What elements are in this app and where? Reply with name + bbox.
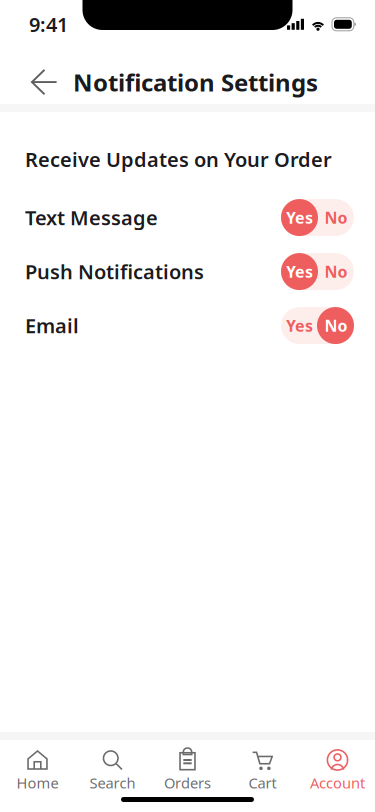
staticText: Account bbox=[310, 773, 365, 792]
staticText: No bbox=[324, 261, 347, 282]
staticText: No bbox=[324, 315, 347, 336]
staticText: Orders bbox=[164, 773, 211, 792]
button[interactable]: Home bbox=[0, 749, 75, 792]
staticText: Search bbox=[89, 773, 135, 792]
button[interactable]: Search bbox=[75, 749, 150, 792]
staticText: Cart bbox=[248, 773, 276, 792]
staticText: Text Message bbox=[25, 204, 158, 231]
staticText: Home bbox=[16, 773, 58, 792]
staticText: Push Notifications bbox=[25, 258, 204, 285]
button[interactable]: Yes bbox=[281, 253, 354, 290]
staticText: Yes bbox=[286, 315, 313, 336]
button[interactable]: Back bbox=[31, 70, 73, 95]
staticText: No bbox=[324, 207, 347, 228]
staticText: Email bbox=[25, 312, 79, 339]
button[interactable]: Account bbox=[300, 749, 375, 792]
staticText: Yes bbox=[286, 261, 313, 282]
staticText: Receive Updates on Your Order bbox=[25, 146, 332, 173]
button[interactable]: Yes bbox=[281, 307, 354, 344]
button[interactable]: Yes bbox=[281, 199, 354, 236]
staticText: Yes bbox=[286, 207, 313, 228]
button[interactable]: Orders bbox=[150, 749, 225, 792]
button[interactable]: Cart bbox=[225, 749, 300, 792]
staticText: 9:41 bbox=[29, 11, 68, 38]
staticText: Notification Settings bbox=[73, 66, 318, 98]
